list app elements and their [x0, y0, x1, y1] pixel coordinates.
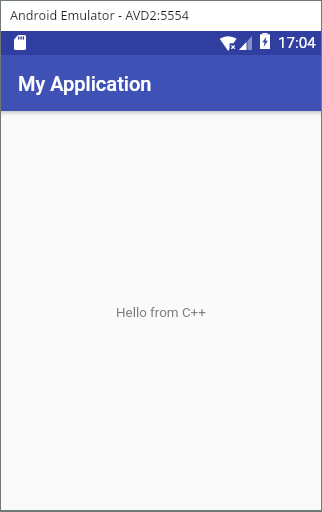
other: Mobile signal: [239, 36, 252, 50]
staticText: 17:04: [278, 34, 316, 52]
button[interactable]: My Application: [1, 55, 321, 111]
staticText: Android Emulator - AVD2:5554: [10, 7, 189, 24]
staticText: My Application: [18, 72, 152, 95]
staticText: Hello from C++: [116, 305, 206, 321]
other: Battery charging: [260, 33, 270, 49]
other: Wi-Fi, no internet: [219, 35, 238, 51]
other: SD card: [14, 35, 26, 50]
